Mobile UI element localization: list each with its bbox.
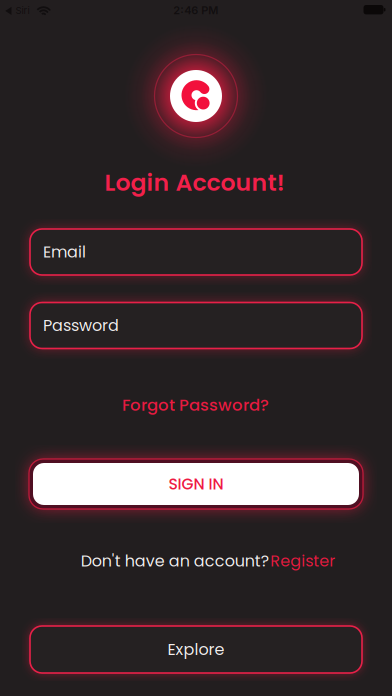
button[interactable]: Email: [30, 229, 362, 275]
staticText: Don't have an account?: [81, 550, 269, 572]
button[interactable]: Register: [270, 550, 335, 572]
staticText: SIGN IN: [168, 473, 223, 495]
staticText: Email: [43, 241, 86, 263]
staticText: 2:46 PM: [173, 3, 218, 17]
staticText: Siri: [15, 5, 29, 16]
staticText: Register: [270, 550, 335, 572]
button[interactable]: Forgot Password?: [122, 393, 269, 416]
staticText: Password: [43, 315, 119, 336]
staticText: Forgot Password?: [122, 393, 269, 416]
button[interactable]: Explore: [30, 626, 362, 673]
button[interactable]: Password: [30, 302, 362, 348]
staticText: Explore: [167, 639, 224, 660]
button[interactable]: SIGN IN: [29, 459, 363, 509]
staticText: Login Account!: [104, 166, 284, 199]
